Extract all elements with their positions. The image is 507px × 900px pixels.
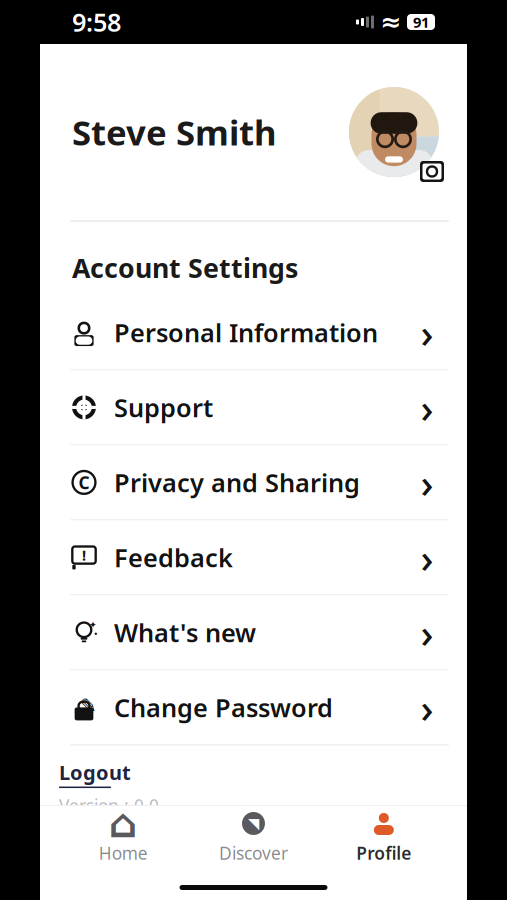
staticText: Feedback (114, 541, 233, 574)
staticText: Discover (219, 841, 288, 864)
staticText: Logout (59, 759, 131, 786)
button[interactable]: Profile (319, 803, 449, 868)
button[interactable]: ◥ (188, 803, 319, 868)
button[interactable]: Change profile photo (343, 81, 445, 183)
staticText: › (420, 381, 433, 434)
button[interactable]: Support (40, 370, 467, 444)
staticText: Account Settings (72, 250, 298, 285)
staticText: 9:58 (72, 5, 121, 39)
staticText: › (420, 456, 433, 509)
staticText: ⌂ (109, 801, 138, 846)
button[interactable]: ✦ (40, 595, 467, 669)
staticText: ≈ (380, 8, 401, 36)
staticText: Profile (356, 841, 411, 864)
staticText: Change Password (114, 691, 333, 724)
staticText: Support (114, 391, 213, 424)
staticText: › (420, 306, 433, 359)
button[interactable]: ! (40, 520, 467, 594)
staticText: 91 (413, 12, 429, 32)
staticText: Version : 0.0 (59, 794, 159, 817)
staticText: What's new (114, 616, 256, 649)
staticText: ✎ (80, 694, 97, 717)
button[interactable]: ⌂ (58, 803, 188, 868)
staticText: › (420, 531, 433, 584)
staticText: › (420, 681, 433, 734)
staticText: › (420, 606, 433, 659)
button[interactable]: Personal Information (40, 295, 467, 369)
staticText: Personal Information (114, 316, 378, 349)
button[interactable]: C (40, 445, 467, 519)
staticText: Steve Smith (72, 109, 277, 155)
staticText: ◥ (248, 815, 259, 832)
staticText: C (78, 471, 89, 494)
staticText: ! (82, 545, 86, 565)
button[interactable]: Logout (59, 759, 131, 788)
staticText: Privacy and Sharing (114, 466, 360, 499)
staticText: Home (99, 841, 148, 864)
staticText: ✦ (89, 619, 97, 630)
button[interactable]: ✎ (40, 670, 467, 744)
